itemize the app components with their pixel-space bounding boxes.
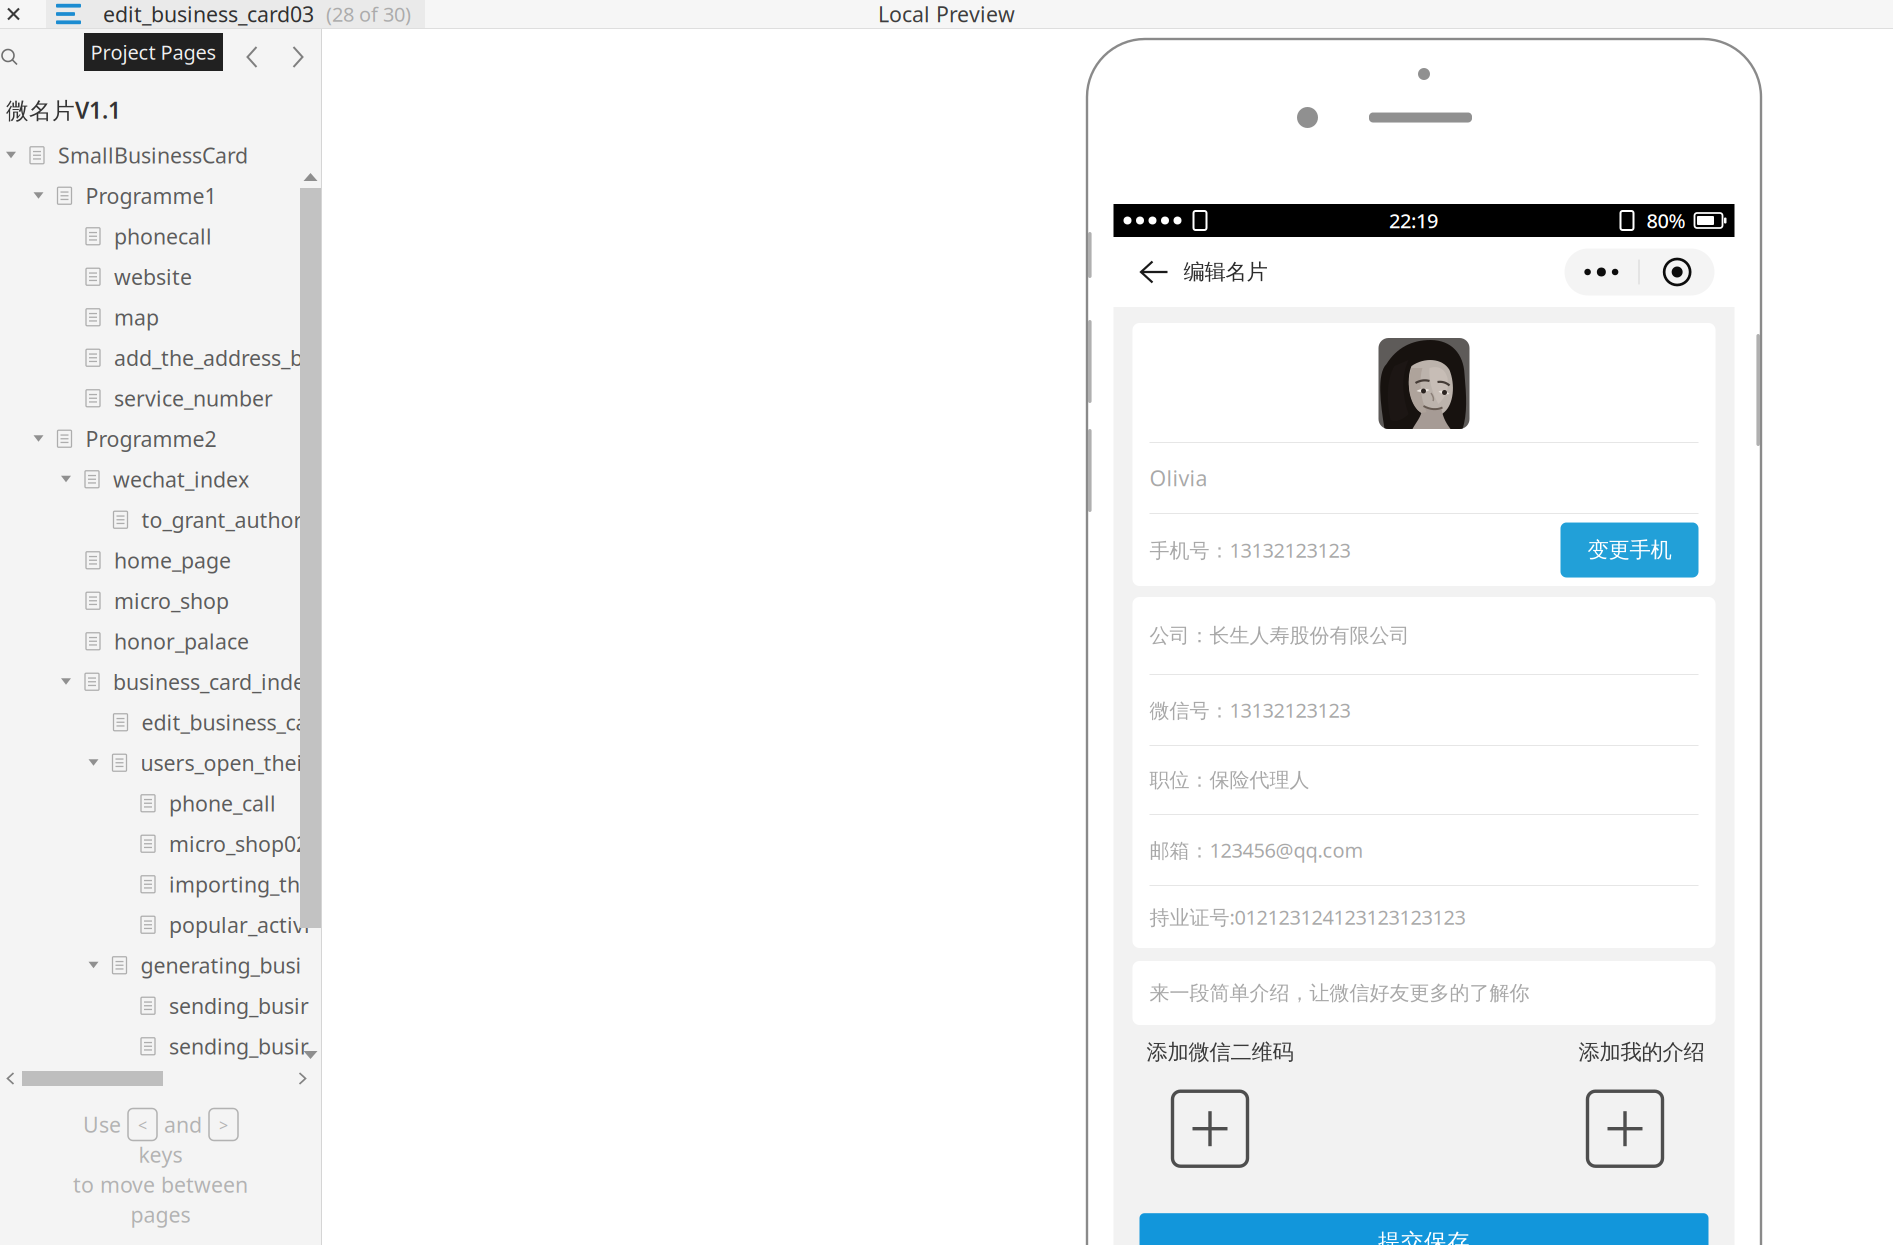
staticText: keys bbox=[138, 1140, 182, 1169]
staticText: micro_shop bbox=[114, 587, 229, 615]
button[interactable]: website bbox=[0, 256, 321, 297]
staticText: 来一段简单介绍，让微信好友更多的了解你 bbox=[1149, 981, 1529, 1005]
staticText: 持业证号:012123124123123123123 bbox=[1149, 904, 1465, 930]
button[interactable]: popular_activi bbox=[0, 904, 321, 945]
button[interactable]: wechat_index bbox=[0, 459, 321, 499]
button[interactable]: micro_shop02 bbox=[0, 823, 321, 864]
staticText: 微信号：13132123123 bbox=[1149, 697, 1350, 723]
button[interactable]: honor_palace bbox=[0, 621, 321, 661]
button[interactable]: Close bbox=[0, 0, 46, 27]
staticText: Use bbox=[83, 1110, 121, 1139]
staticText: pages bbox=[130, 1200, 190, 1229]
button[interactable]: 提交保存 bbox=[1139, 1213, 1708, 1245]
staticText: importing_the bbox=[169, 870, 312, 898]
staticText: map bbox=[114, 303, 159, 331]
button[interactable]: importing_the bbox=[0, 864, 321, 904]
button[interactable]: micro_shop bbox=[0, 580, 321, 621]
staticText: website bbox=[114, 263, 192, 291]
staticText: 80% bbox=[1646, 207, 1685, 234]
staticText: (28 of 30) bbox=[326, 1, 411, 27]
staticText: sending_busir bbox=[169, 1032, 309, 1060]
staticText: Olivia bbox=[1149, 464, 1207, 492]
staticText: to move between bbox=[73, 1170, 248, 1199]
staticText: 变更手机 bbox=[1587, 537, 1671, 563]
staticText: edit_business_ca bbox=[141, 708, 307, 736]
button[interactable]: business_card_inde bbox=[0, 661, 321, 702]
button[interactable]: More options bbox=[1564, 248, 1714, 295]
button[interactable]: sending_busir bbox=[0, 985, 321, 1026]
button[interactable]: service_number bbox=[0, 378, 321, 418]
button[interactable]: map bbox=[0, 297, 321, 337]
button[interactable]: Next page bbox=[283, 40, 313, 74]
staticText: wechat_index bbox=[113, 465, 249, 493]
staticText: 添加微信二维码 bbox=[1146, 1039, 1293, 1065]
button[interactable]: edit_business_card03 bbox=[46, 0, 425, 28]
staticText: edit_business_card03 bbox=[103, 0, 314, 28]
button[interactable]: Previous page bbox=[237, 40, 267, 74]
staticText: sending_busir bbox=[169, 992, 309, 1020]
button[interactable]: edit_business_ca bbox=[0, 702, 321, 742]
button[interactable]: 变更手机 bbox=[1560, 522, 1698, 577]
button[interactable]: Programme2 bbox=[0, 418, 321, 459]
staticText: service_number bbox=[114, 384, 273, 412]
staticText: 22:19 bbox=[1389, 207, 1438, 234]
staticText: micro_shop02 bbox=[169, 830, 308, 858]
staticText: 手机号：13132123123 bbox=[1149, 537, 1350, 563]
staticText: > bbox=[219, 1114, 228, 1136]
staticText: 提交保存 bbox=[1378, 1228, 1470, 1245]
button[interactable]: generating_busi bbox=[0, 945, 321, 985]
staticText: SmallBusinessCard bbox=[58, 141, 248, 169]
button[interactable]: phone_call bbox=[0, 783, 321, 823]
button[interactable]: Back bbox=[1133, 248, 1175, 296]
staticText: and bbox=[164, 1110, 202, 1139]
button[interactable]: 添加我的介绍 bbox=[1578, 1039, 1704, 1166]
staticText: Programme2 bbox=[85, 425, 216, 453]
staticText: Project Pages bbox=[90, 39, 216, 65]
button[interactable]: sending_busir bbox=[0, 1026, 321, 1066]
button[interactable]: add_the_address_b bbox=[0, 337, 321, 378]
button[interactable]: phonecall bbox=[0, 216, 321, 256]
staticText: to_grant_authori bbox=[141, 506, 308, 534]
staticText: 职位：保险代理人 bbox=[1149, 768, 1309, 792]
button[interactable]: home_page bbox=[0, 540, 321, 580]
staticText: add_the_address_b bbox=[114, 344, 303, 372]
staticText: 编辑名片 bbox=[1183, 259, 1267, 285]
staticText: 邮箱：123456@qq.com bbox=[1149, 837, 1363, 863]
staticText: generating_busi bbox=[140, 951, 301, 979]
staticText: popular_activi bbox=[169, 911, 310, 939]
staticText: Programme1 bbox=[85, 182, 216, 210]
staticText: phonecall bbox=[114, 222, 212, 250]
staticText: Local Preview bbox=[878, 0, 1015, 28]
staticText: 微名片V1.1 bbox=[6, 95, 121, 125]
staticText: users_open_thei bbox=[140, 749, 302, 777]
button[interactable]: Search bbox=[1, 42, 18, 71]
staticText: honor_palace bbox=[114, 627, 249, 655]
button[interactable]: users_open_thei bbox=[0, 742, 321, 783]
staticText: phone_call bbox=[169, 789, 276, 817]
button[interactable]: to_grant_authori bbox=[0, 499, 321, 540]
staticText: < bbox=[138, 1114, 147, 1136]
staticText: 添加我的介绍 bbox=[1578, 1039, 1704, 1065]
button[interactable]: 添加微信二维码 bbox=[1146, 1039, 1293, 1166]
button[interactable]: SmallBusinessCard bbox=[0, 135, 321, 175]
staticText: business_card_inde bbox=[113, 668, 305, 696]
staticText: 公司：长生人寿股份有限公司 bbox=[1149, 623, 1409, 648]
staticText: home_page bbox=[114, 546, 231, 574]
button[interactable]: Programme1 bbox=[0, 175, 321, 216]
